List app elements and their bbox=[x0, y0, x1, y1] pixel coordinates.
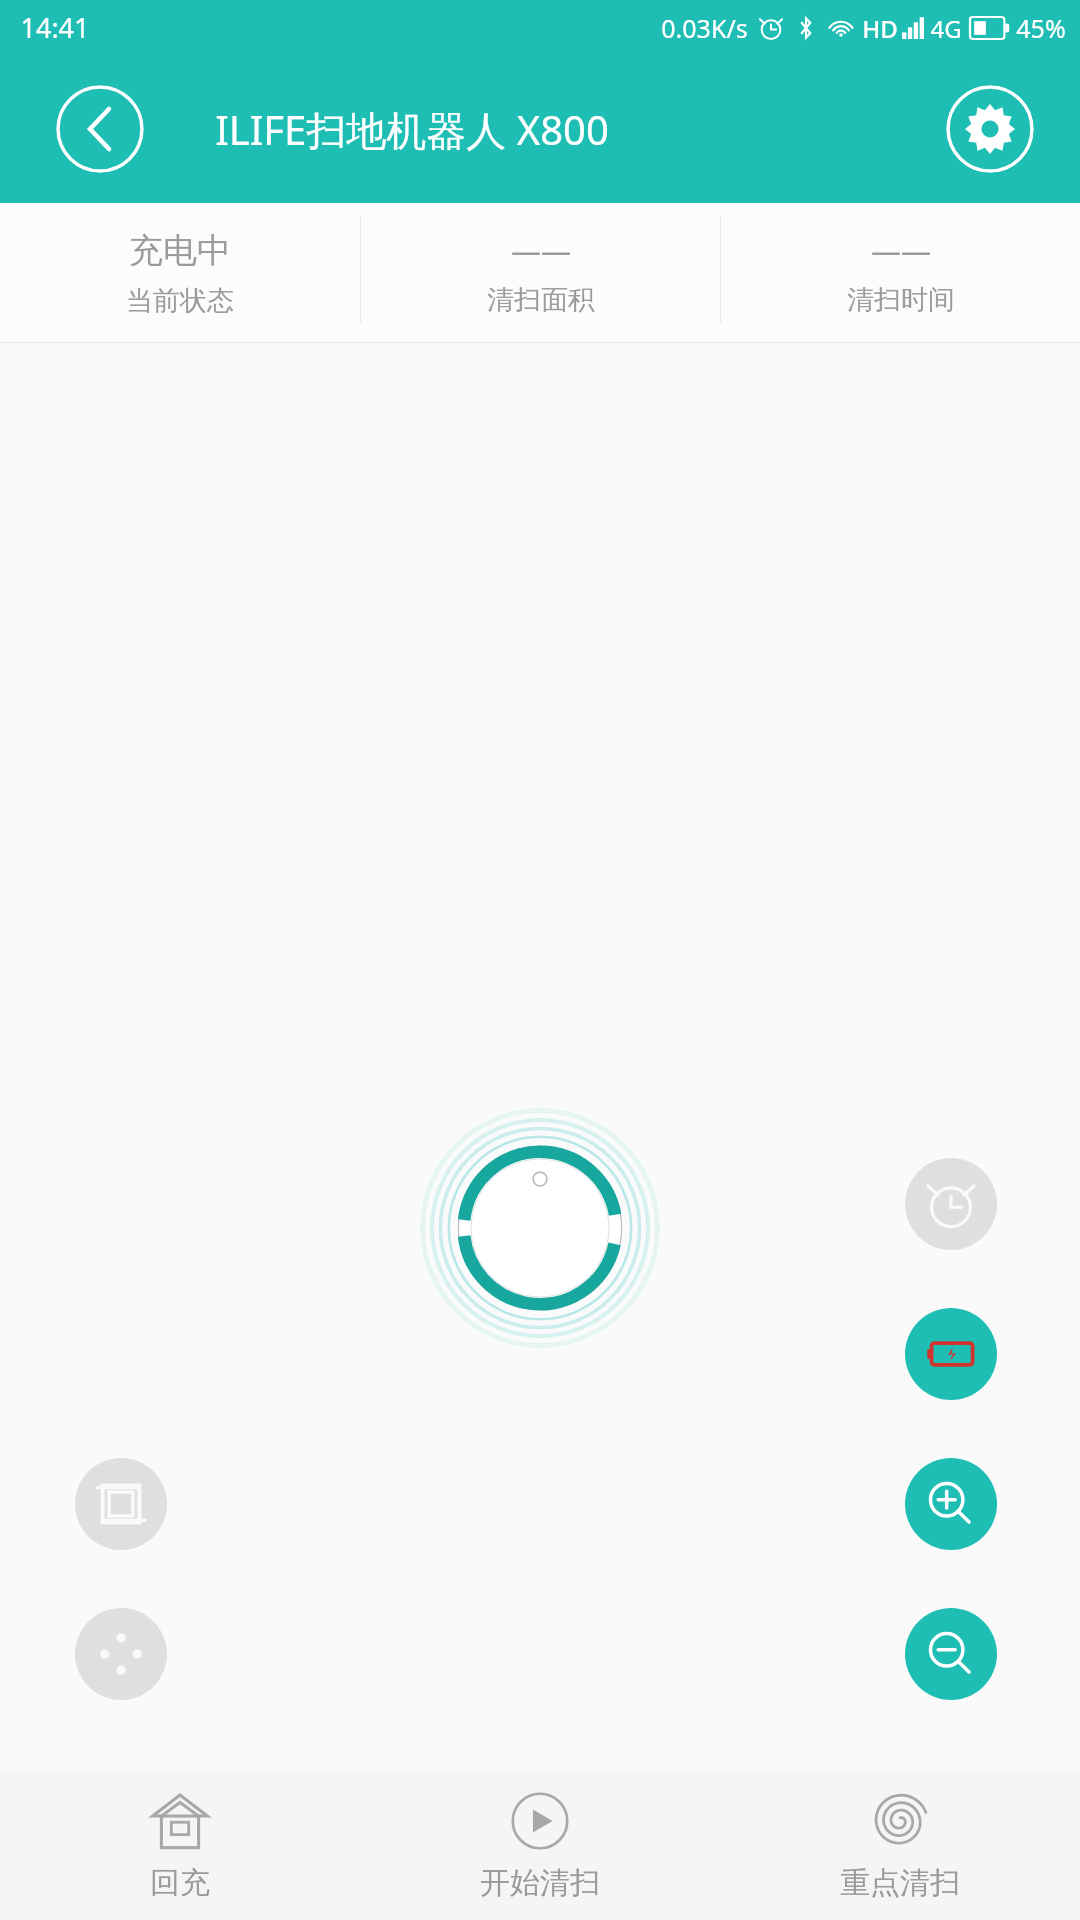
staticText: 清扫面积 bbox=[487, 283, 595, 317]
staticText: 重点清扫 bbox=[840, 1864, 960, 1902]
staticText: 开始清扫 bbox=[480, 1864, 600, 1902]
staticText: ILIFE扫地机器人 X800 bbox=[215, 102, 609, 157]
staticText: 回充 bbox=[150, 1864, 210, 1902]
staticText: 4G bbox=[930, 12, 962, 45]
staticText: HD bbox=[862, 12, 898, 45]
button[interactable]: Back bbox=[56, 85, 144, 173]
button[interactable]: 重点清扫 bbox=[720, 1772, 1080, 1920]
button[interactable]: Zoom in bbox=[905, 1458, 997, 1550]
staticText: 当前状态 bbox=[126, 284, 234, 318]
button[interactable]: Direction bbox=[75, 1608, 167, 1700]
button[interactable]: Charge bbox=[905, 1308, 997, 1400]
button[interactable]: Area bbox=[75, 1458, 167, 1550]
button[interactable]: —— bbox=[361, 203, 720, 343]
staticText: 清扫时间 bbox=[847, 283, 955, 317]
staticText: 0.03K/s bbox=[661, 11, 748, 45]
button[interactable]: —— bbox=[721, 203, 1080, 343]
button[interactable]: 开始清扫 bbox=[360, 1772, 720, 1920]
button[interactable]: Schedule bbox=[905, 1158, 997, 1250]
button[interactable]: Zoom out bbox=[905, 1608, 997, 1700]
staticText: —— bbox=[511, 230, 571, 271]
staticText: 充电中 bbox=[129, 229, 231, 272]
staticText: 14:41 bbox=[20, 9, 90, 46]
staticText: —— bbox=[871, 230, 931, 271]
button[interactable]: 回充 bbox=[0, 1772, 360, 1920]
button[interactable]: 充电中 bbox=[0, 203, 360, 343]
button[interactable]: Robot bbox=[420, 1108, 660, 1348]
button[interactable]: Settings bbox=[946, 85, 1034, 173]
staticText: 45% bbox=[1016, 11, 1066, 45]
